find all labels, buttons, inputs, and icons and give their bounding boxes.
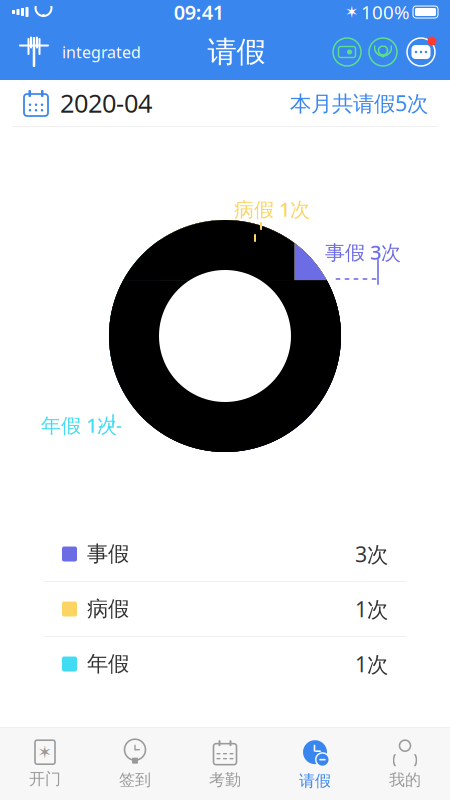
button[interactable]: 考勤 [180,732,270,796]
staticText: 09:41 [174,0,224,25]
staticText: 1次 [355,595,388,623]
button[interactable]: 网络 [368,37,398,67]
button[interactable]: ✶ [0,732,90,796]
staticText: 本月共请假5次 [290,89,428,117]
staticText: 病假 1次 [234,196,310,222]
button[interactable]: 签到 [90,732,180,796]
button[interactable]: 请假 [270,732,360,796]
staticText: 签到 [119,770,151,790]
button[interactable]: 我的 [360,732,450,796]
staticText: 年假 [87,651,129,677]
staticText: 我的 [389,770,421,790]
staticText: 年假 1次 [41,412,117,438]
staticText: 事假 3次 [325,239,401,265]
staticText: integrated [62,41,141,63]
staticText: 100% [361,0,410,24]
button[interactable]: 门禁卡 [332,37,362,67]
button[interactable]: 年假 [0,637,450,691]
staticText: 请假 [207,34,265,70]
staticText: ✶ [37,742,52,762]
staticText: ✶ [345,3,358,21]
button[interactable]: 消息 [404,35,438,69]
staticText: 1次 [355,650,388,678]
button[interactable]: 2020-04 [0,80,450,126]
staticText: 开门 [29,769,61,789]
staticText: 2020-04 [60,86,152,120]
staticText: 请假 [299,771,331,791]
staticText: 事假 [87,541,129,567]
staticText: 考勤 [209,770,241,790]
button[interactable]: 病假 [0,582,450,636]
button[interactable]: 事假 [0,527,450,581]
staticText: 3次 [355,540,388,568]
staticText: 病假 [87,596,129,622]
